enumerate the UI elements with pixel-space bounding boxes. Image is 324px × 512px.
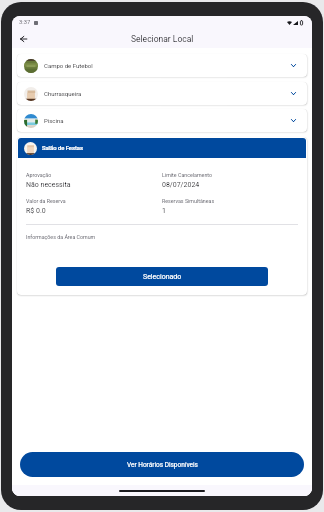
staticText: Valor da Reserva <box>26 198 66 204</box>
staticText: Reservas Simultâneas <box>162 198 215 204</box>
staticText: Churrasqueira <box>44 90 82 97</box>
staticText: Salão de Festas <box>42 145 83 152</box>
button[interactable]: Selecionado <box>56 267 268 286</box>
staticText: Selecionado <box>143 273 182 281</box>
button[interactable]: Campo de Futebol <box>17 54 307 77</box>
button[interactable]: Back <box>15 31 31 47</box>
staticText: Ver Horários Disponíveis <box>127 461 198 469</box>
staticText: R$ 0.0 <box>26 207 46 215</box>
staticText: 08/07/2024 <box>162 181 200 189</box>
button[interactable]: Ver Horários Disponíveis <box>20 452 304 477</box>
staticText: 1 <box>162 207 166 215</box>
button[interactable]: Salão de Festas <box>18 138 306 158</box>
staticText: Piscina <box>44 117 64 124</box>
staticText: Aprovação <box>26 172 52 178</box>
staticText: Informações da Área Comum <box>26 234 96 240</box>
staticText: Não necessita <box>26 181 71 189</box>
staticText: 3:37 <box>19 19 31 26</box>
staticText: Selecionar Local <box>131 34 194 44</box>
button[interactable]: Churrasqueira <box>17 82 307 105</box>
staticText: Limite Cancelamento <box>162 172 213 178</box>
staticText: Campo de Futebol <box>44 62 93 69</box>
button[interactable]: Piscina <box>17 109 307 132</box>
